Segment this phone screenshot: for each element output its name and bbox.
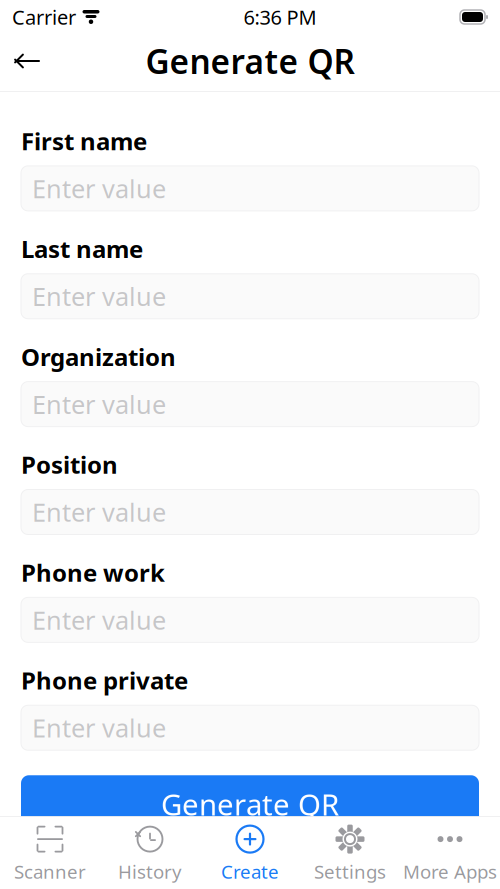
staticText: Enter value [32,495,166,529]
button[interactable]: Enter value [21,166,479,211]
button[interactable]: Create [200,825,300,883]
staticText: Enter value [32,387,166,421]
staticText: Generate QR [145,39,354,83]
staticText: Organization [21,341,176,373]
staticText: Position [21,449,118,480]
button[interactable]: Generate QR [21,775,479,833]
button[interactable]: Scanner [0,825,100,883]
staticText: Settings [314,859,386,884]
staticText: Enter value [32,172,166,205]
staticText: Scanner [14,859,86,884]
button[interactable]: Enter value [21,382,479,427]
button[interactable]: Enter value [21,705,479,750]
button[interactable]: More Apps [400,825,500,883]
button[interactable]: Settings [300,825,400,883]
staticText: Enter value [32,711,166,744]
staticText: 6:36 PM [243,4,316,30]
button[interactable]: Enter value [21,274,479,319]
staticText: Generate QR [161,785,339,824]
staticText: Phone work [21,556,165,588]
staticText: History [118,859,182,884]
staticText: Enter value [32,603,166,637]
staticText: Carrier [12,4,76,30]
staticText: Create [221,859,279,884]
button[interactable]: History [100,825,200,883]
button[interactable]: Back [0,36,56,86]
staticText: Enter value [32,279,166,313]
button[interactable]: Enter value [21,489,479,534]
staticText: Phone private [21,664,188,696]
staticText: First name [21,125,147,157]
button[interactable]: Enter value [21,597,479,642]
staticText: Last name [21,233,143,265]
staticText: More Apps [403,859,497,884]
